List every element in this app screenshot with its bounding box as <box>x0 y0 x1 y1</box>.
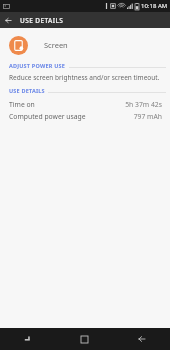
staticText: Computed power usage <box>9 112 86 121</box>
button[interactable]: Home <box>56 328 113 350</box>
staticText: 10:18 AM <box>141 2 168 10</box>
staticText: Screen <box>44 40 68 50</box>
staticText: Reduce screen brightness and/or screen t… <box>9 73 160 82</box>
staticText: USE DETAILS <box>20 16 64 25</box>
staticText: USE DETAILS <box>9 87 45 94</box>
button[interactable]: Back <box>0 12 16 28</box>
staticText: ADJUST POWER USE <box>9 62 66 69</box>
button[interactable]: Back <box>113 328 170 350</box>
staticText: 5h 37m 42s <box>125 100 162 109</box>
staticText: Time on <box>9 100 35 109</box>
button[interactable]: Recent apps <box>0 328 56 350</box>
staticText: 797 mAh <box>133 112 162 121</box>
button[interactable]: Screen <box>0 28 170 62</box>
